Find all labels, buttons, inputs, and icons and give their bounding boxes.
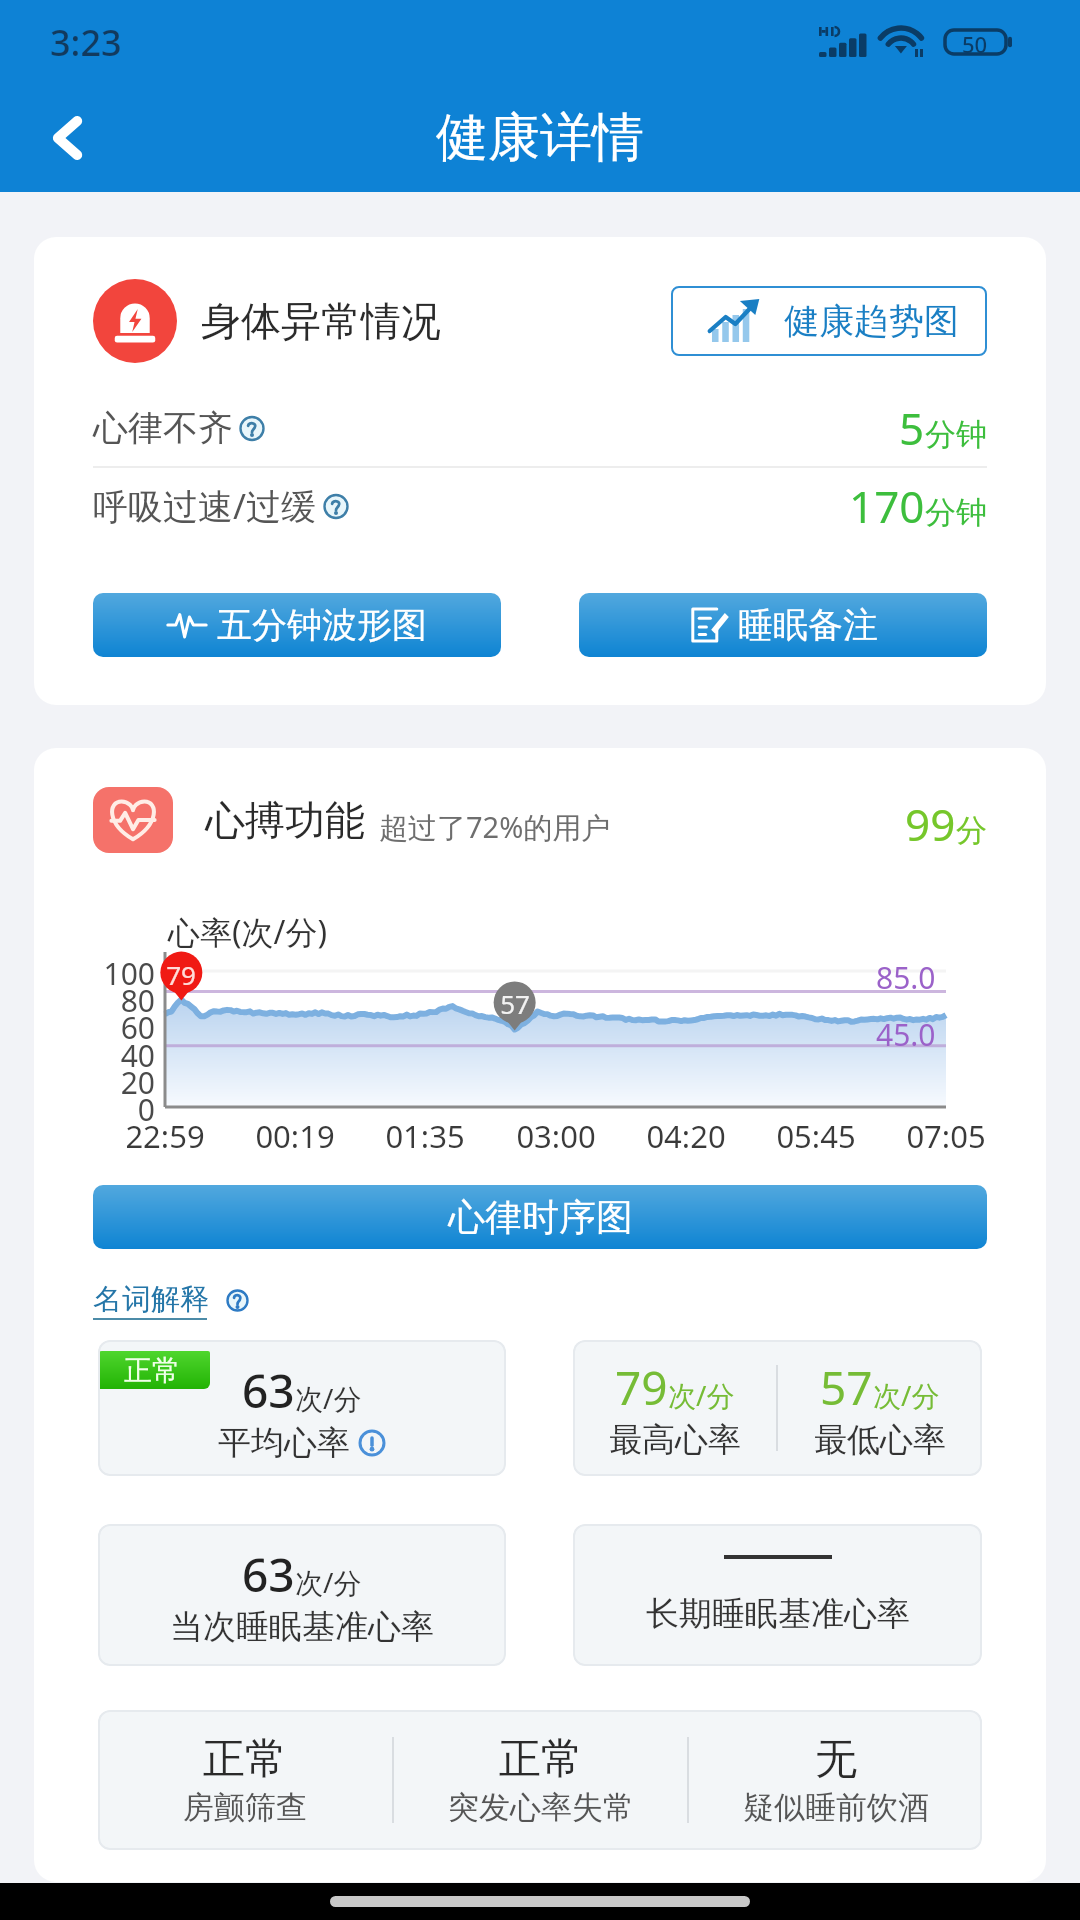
staticText: 房颤筛查 bbox=[183, 1788, 307, 1827]
staticText: 最高心率 bbox=[609, 1419, 741, 1461]
staticText: 次/分 bbox=[668, 1376, 735, 1414]
staticText: 平均心率 bbox=[218, 1422, 350, 1464]
staticText: 当次睡眠基准心率 bbox=[170, 1606, 434, 1648]
staticText: 呼吸过速/过缓 bbox=[93, 482, 317, 530]
button[interactable]: 心律不齐 bbox=[34, 390, 1046, 466]
staticText: 疑似睡前饮酒 bbox=[743, 1788, 929, 1827]
staticText: 79 bbox=[141, 957, 221, 992]
staticText: 长期睡眠基准心率 bbox=[646, 1593, 910, 1635]
button[interactable]: 79 bbox=[573, 1340, 982, 1476]
staticText: 健康详情 bbox=[436, 105, 644, 171]
staticText: 63 bbox=[242, 1543, 295, 1606]
button[interactable]: 呼吸过速/过缓 bbox=[34, 468, 1046, 544]
staticText: 健康趋势图 bbox=[784, 299, 959, 343]
button[interactable]: 63 bbox=[98, 1524, 506, 1666]
button[interactable]: 长期睡眠基准心率 bbox=[573, 1524, 982, 1666]
staticText: 名词解释 bbox=[93, 1281, 209, 1318]
button[interactable]: 健康趋势图 bbox=[671, 286, 987, 356]
staticText: 22:59 bbox=[85, 1115, 245, 1157]
staticText: 07:05 bbox=[866, 1115, 1026, 1157]
staticText: 63 bbox=[242, 1359, 295, 1422]
staticText: 57 bbox=[820, 1356, 873, 1419]
button[interactable]: Back bbox=[26, 96, 110, 180]
button[interactable]: 正常 bbox=[98, 1340, 506, 1476]
staticText: 心律时序图 bbox=[448, 1194, 633, 1241]
button[interactable]: 心律时序图 bbox=[93, 1185, 987, 1249]
staticText: 00:19 bbox=[215, 1115, 375, 1157]
staticText: 次/分 bbox=[295, 1563, 362, 1601]
staticText: 60 bbox=[34, 1007, 155, 1048]
staticText: 次/分 bbox=[295, 1379, 362, 1417]
staticText: 5 bbox=[899, 398, 925, 458]
staticText: 04:20 bbox=[606, 1115, 766, 1157]
staticText: 79 bbox=[615, 1356, 668, 1419]
staticText: 80 bbox=[34, 980, 155, 1021]
staticText: 分钟 bbox=[925, 415, 987, 454]
staticText: 最低心率 bbox=[814, 1419, 946, 1461]
staticText: 正常 bbox=[203, 1733, 287, 1786]
staticText: 57 bbox=[475, 986, 555, 1021]
button[interactable]: 睡眠备注 bbox=[579, 593, 987, 657]
staticText: 3:23 bbox=[50, 18, 122, 67]
staticText: 99 bbox=[905, 794, 956, 854]
staticText: 五分钟波形图 bbox=[217, 603, 427, 647]
staticText: 心律不齐 bbox=[93, 406, 233, 450]
staticText: 50 bbox=[962, 29, 988, 55]
staticText: 心搏功能 bbox=[205, 795, 365, 845]
staticText: 01:35 bbox=[345, 1115, 505, 1157]
staticText: 无 bbox=[815, 1733, 857, 1786]
staticText: 20 bbox=[34, 1062, 155, 1103]
staticText: 03:00 bbox=[476, 1115, 636, 1157]
staticText: 超过了72%的用户 bbox=[379, 807, 611, 847]
staticText: 0 bbox=[34, 1089, 155, 1130]
button[interactable]: 正常 bbox=[98, 1710, 982, 1850]
staticText: 正常 bbox=[499, 1733, 583, 1786]
staticText: 100 bbox=[34, 953, 155, 994]
button[interactable]: 名词解释 bbox=[93, 1281, 249, 1320]
staticText: 正常 bbox=[124, 1353, 180, 1388]
staticText: 次/分 bbox=[873, 1376, 940, 1414]
staticText: 睡眠备注 bbox=[738, 603, 878, 647]
staticText: 分 bbox=[956, 811, 987, 850]
staticText: 40 bbox=[34, 1035, 155, 1076]
staticText: 突发心率失常 bbox=[448, 1788, 634, 1827]
staticText: 85.0 bbox=[876, 957, 936, 998]
staticText: 分钟 bbox=[925, 493, 987, 532]
staticText: 45.0 bbox=[876, 1014, 936, 1055]
button[interactable]: 五分钟波形图 bbox=[93, 593, 501, 657]
staticText: 心率(次/分) bbox=[168, 910, 328, 954]
staticText: 身体异常情况 bbox=[201, 296, 441, 346]
staticText: 170 bbox=[849, 476, 925, 536]
staticText: 05:45 bbox=[736, 1115, 896, 1157]
